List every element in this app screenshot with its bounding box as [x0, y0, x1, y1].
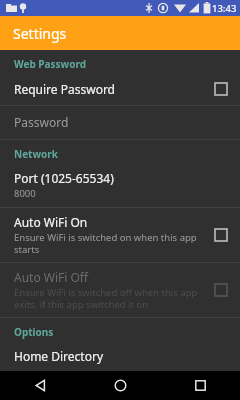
button[interactable]: Require Password: [0, 74, 240, 105]
staticText: Home Directory: [14, 348, 104, 364]
staticText: Auto WiFi On: [14, 214, 88, 230]
staticText: Ensure WiFi is switched off when this ap…: [14, 286, 206, 310]
staticText: Port (1025-65534): [14, 170, 114, 186]
staticText: 13:43: [212, 2, 237, 15]
staticText: Auto WiFi Off: [14, 269, 89, 285]
staticText: Ensure WiFi is switched on when this app…: [14, 231, 206, 255]
staticText: Settings: [13, 24, 67, 43]
staticText: Require Password: [14, 81, 116, 97]
button: Auto WiFi Off: [0, 263, 240, 317]
button[interactable]: Recent apps: [160, 371, 240, 400]
staticText: Options: [14, 325, 54, 339]
button[interactable]: Home Directory: [0, 342, 240, 371]
staticText: 8000: [14, 187, 36, 200]
staticText: Password: [14, 114, 69, 130]
button[interactable]: Back: [0, 371, 80, 400]
staticText: Web Password: [14, 57, 86, 71]
button[interactable]: Auto WiFi On: [0, 208, 240, 262]
button[interactable]: Password: [0, 106, 240, 139]
staticText: Network: [14, 147, 58, 161]
button[interactable]: Home: [80, 371, 160, 400]
button[interactable]: Port (1025-65534): [0, 164, 240, 207]
